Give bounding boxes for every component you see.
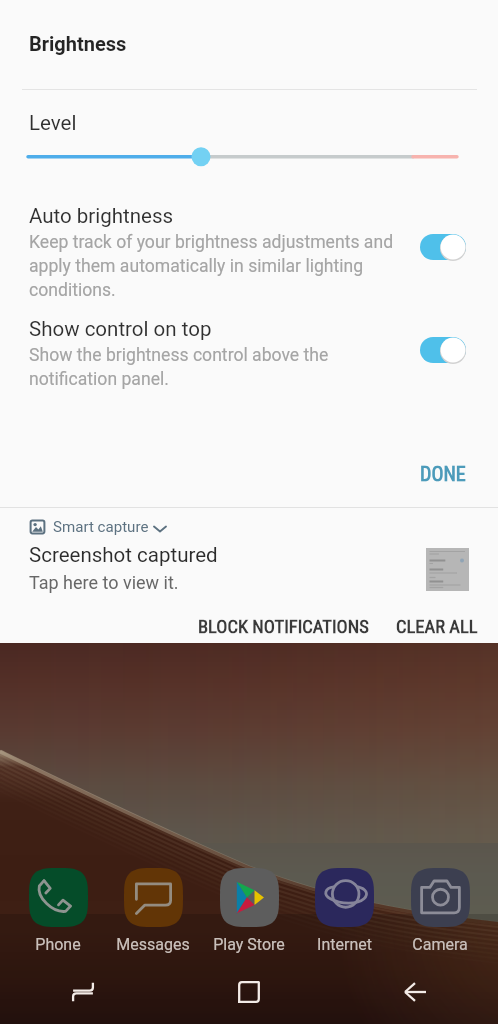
button[interactable]: Brightness level [0,139,498,173]
button[interactable]: Home [166,960,332,1024]
staticText: CLEAR ALL [396,616,478,638]
staticText: Camera [412,935,468,954]
button[interactable]: CLEAR ALL [386,608,488,646]
staticText: DONE [420,462,466,485]
button[interactable]: Toggle setting [420,337,466,363]
staticText: Level [29,111,77,135]
button[interactable]: Smart capture [24,512,172,542]
staticText: Phone [35,935,81,954]
staticText: Show the brightness control above the no… [29,345,329,389]
staticText: Smart capture [53,518,149,536]
staticText: Show control on top [29,317,212,341]
button[interactable]: Phone [21,866,95,954]
staticText: BLOCK NOTIFICATIONS [198,616,369,638]
button[interactable]: BLOCK NOTIFICATIONS [188,608,379,646]
staticText: Keep track of your brightness adjustment… [29,232,394,300]
button[interactable]: Toggle setting [420,234,466,260]
staticText: Messages [116,935,190,954]
button[interactable]: Play Store [212,866,286,954]
button[interactable]: Screenshot preview [426,548,469,591]
button[interactable]: Recent apps [0,960,166,1024]
staticText: Play Store [213,935,285,954]
staticText: Auto brightness [29,204,174,228]
button[interactable]: Camera [403,866,477,954]
staticText: Brightness [29,32,127,55]
button[interactable]: DONE [404,450,482,497]
button[interactable]: Back [332,960,498,1024]
staticText: Internet [317,935,372,954]
button[interactable]: Messages [116,866,190,954]
staticText: Tap here to view it. [29,572,179,593]
staticText: Screenshot captured [29,543,218,567]
button[interactable]: Internet [307,866,381,954]
